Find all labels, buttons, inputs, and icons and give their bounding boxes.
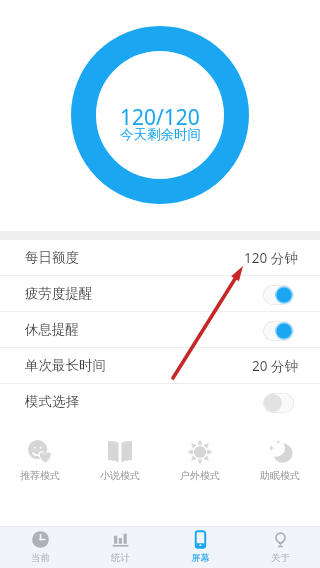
staticText: 疲劳度提醒 [25, 285, 93, 302]
button[interactable]: 模式选择 [0, 384, 320, 419]
button[interactable]: 小说模式 [89, 438, 151, 484]
button[interactable]: 屏幕 [160, 527, 240, 568]
staticText: 休息提醒 [25, 321, 79, 338]
button[interactable]: Switch on [263, 321, 294, 341]
staticText: 户外模式 [180, 469, 220, 482]
staticText: 120 分钟 [244, 249, 298, 267]
button[interactable]: 助眠模式 [249, 438, 311, 484]
staticText: 助眠模式 [260, 469, 300, 482]
button[interactable]: 推荐模式 [9, 438, 71, 484]
button[interactable]: 每日额度 [0, 240, 320, 276]
button[interactable]: 当前 [0, 527, 80, 568]
button[interactable]: Switch off [263, 393, 294, 413]
staticText: 今天剩余时间 [120, 126, 201, 143]
staticText: 关于 [271, 552, 290, 564]
staticText: 20 分钟 [252, 357, 298, 375]
button[interactable]: 单次最长时间 [0, 348, 320, 384]
button[interactable]: 疲劳度提醒 [0, 276, 320, 312]
button[interactable]: 户外模式 [169, 438, 231, 484]
button[interactable]: 统计 [80, 527, 160, 568]
button[interactable]: 休息提醒 [0, 312, 320, 348]
staticText: 每日额度 [25, 249, 79, 266]
staticText: 120/120 [120, 103, 200, 132]
button[interactable]: 关于 [240, 527, 320, 568]
staticText: 统计 [111, 552, 130, 564]
staticText: 推荐模式 [20, 469, 60, 482]
button[interactable]: Switch on [263, 285, 294, 305]
staticText: 单次最长时间 [25, 357, 106, 374]
staticText: 模式选择 [25, 393, 79, 410]
staticText: 屏幕 [191, 552, 210, 564]
staticText: 小说模式 [100, 469, 140, 482]
staticText: 当前 [31, 552, 50, 564]
